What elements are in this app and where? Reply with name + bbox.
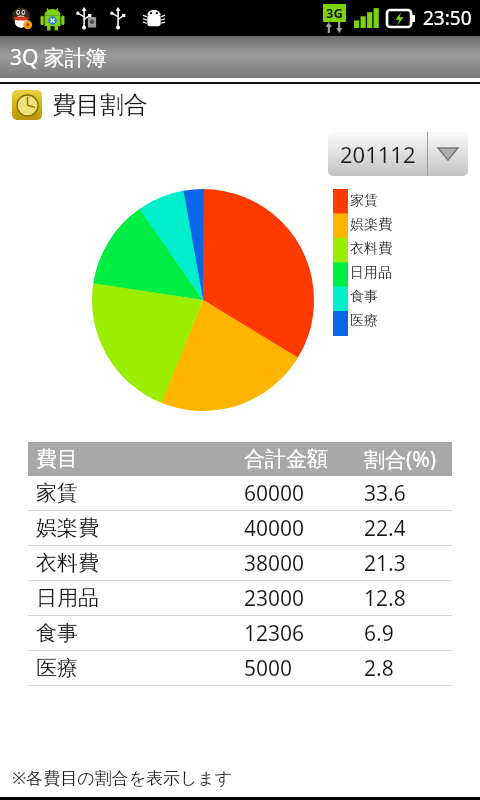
staticText: 5000 [244, 654, 364, 683]
staticText: 40000 [244, 514, 364, 543]
staticText: 娯楽費 [350, 216, 392, 234]
staticText: 201112 [340, 139, 416, 169]
button[interactable]: 医療 [28, 651, 452, 685]
staticText: 医療 [350, 312, 378, 330]
button[interactable]: 201112 [328, 132, 468, 176]
staticText: 3Q 家計簿 [10, 43, 107, 72]
staticText: 6.9 [364, 619, 452, 648]
staticText: 家賃 [350, 192, 378, 210]
staticText: 合計金額 [244, 446, 364, 472]
staticText: ※各費目の割合を表示します [12, 766, 233, 789]
staticText: 12.8 [364, 584, 452, 613]
staticText: 割合(%) [364, 445, 452, 474]
staticText: 医療 [36, 655, 244, 681]
staticText: 費目 [36, 446, 244, 472]
staticText: 日用品 [36, 585, 244, 611]
staticText: 22.4 [364, 514, 452, 543]
other: 費目割合の円グラフ [0, 176, 480, 426]
staticText: 38000 [244, 549, 364, 578]
staticText: 食事 [36, 620, 244, 646]
staticText: 12306 [244, 619, 364, 648]
staticText: 3G [326, 4, 343, 22]
staticText: 60000 [244, 479, 364, 508]
button[interactable]: 日用品 [28, 581, 452, 615]
staticText: 食事 [350, 288, 378, 306]
button[interactable]: 娯楽費 [28, 511, 452, 545]
staticText: 33.6 [364, 479, 452, 508]
staticText: 衣料費 [350, 240, 392, 258]
staticText: 費目割合 [52, 90, 148, 120]
button[interactable]: 衣料費 [28, 546, 452, 580]
staticText: 日用品 [350, 264, 392, 282]
staticText: 2.8 [364, 654, 452, 683]
staticText: 21.3 [364, 549, 452, 578]
staticText: 家賃 [36, 480, 244, 506]
staticText: 衣料費 [36, 550, 244, 576]
staticText: 23:50 [423, 5, 472, 31]
staticText: 娯楽費 [36, 515, 244, 541]
staticText: 23000 [244, 584, 364, 613]
button[interactable]: 食事 [28, 616, 452, 650]
button[interactable]: 家賃 [28, 476, 452, 510]
